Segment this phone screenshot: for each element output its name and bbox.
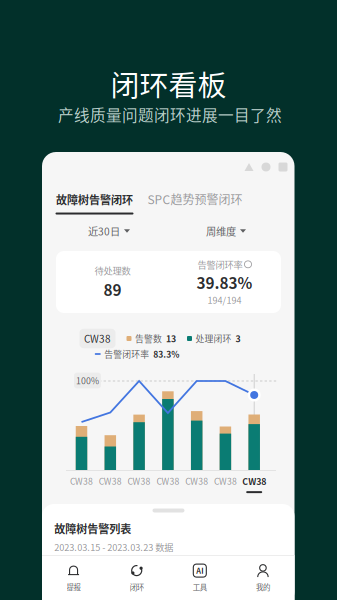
staticText: 告警数 <box>135 332 162 345</box>
staticText: CW38 <box>128 475 151 487</box>
button[interactable]: SPC趋势预警闭环 <box>147 190 242 208</box>
staticText: 告警闭环率 <box>197 258 242 271</box>
staticText: 周维度 <box>206 224 236 238</box>
button[interactable]: 提报 <box>42 555 105 600</box>
staticText: 100% <box>76 374 99 387</box>
staticText: 83.3% <box>153 348 179 360</box>
staticText: CW38 <box>84 331 111 346</box>
staticText: 故障树告警闭环 <box>56 191 133 207</box>
staticText: CW38 <box>242 475 266 488</box>
staticText: 89 <box>103 278 121 300</box>
staticText: 194/194 <box>207 293 241 306</box>
staticText: 闭环看板 <box>110 63 226 104</box>
staticText: CW38 <box>99 475 122 487</box>
staticText: 39.83% <box>196 271 252 293</box>
button[interactable]: 近30日 <box>88 224 130 238</box>
staticText: CW38 <box>156 475 179 487</box>
staticText: 提报 <box>67 582 81 592</box>
staticText: 待处理数 <box>94 264 130 277</box>
staticText: AI <box>196 565 203 576</box>
button[interactable]: 闭环 <box>105 555 168 600</box>
staticText: CW38 <box>70 475 93 487</box>
staticText: 故障树告警列表 <box>54 520 131 536</box>
staticText: 近30日 <box>88 224 120 238</box>
staticText: 告警闭环率 <box>104 348 149 360</box>
staticText: 13 <box>166 332 176 345</box>
button[interactable]: 我的 <box>231 555 294 600</box>
button[interactable]: 故障树告警闭环 <box>55 191 133 214</box>
staticText: CW38 <box>214 475 237 487</box>
staticText: 3 <box>235 332 240 345</box>
staticText: 2023.03.15 - 2023.03.23 数据 <box>54 540 173 554</box>
staticText: 闭环 <box>130 582 144 592</box>
staticText: 我的 <box>256 582 270 592</box>
staticText: 工具 <box>193 582 207 592</box>
button[interactable]: 周维度 <box>206 224 246 238</box>
staticText: 产线质量问题闭环进展一目了然 <box>58 103 282 126</box>
button[interactable]: AI <box>168 555 231 600</box>
staticText: 处理闭环 <box>195 332 231 345</box>
staticText: CW38 <box>185 475 208 487</box>
staticText: SPC趋势预警闭环 <box>147 190 242 208</box>
